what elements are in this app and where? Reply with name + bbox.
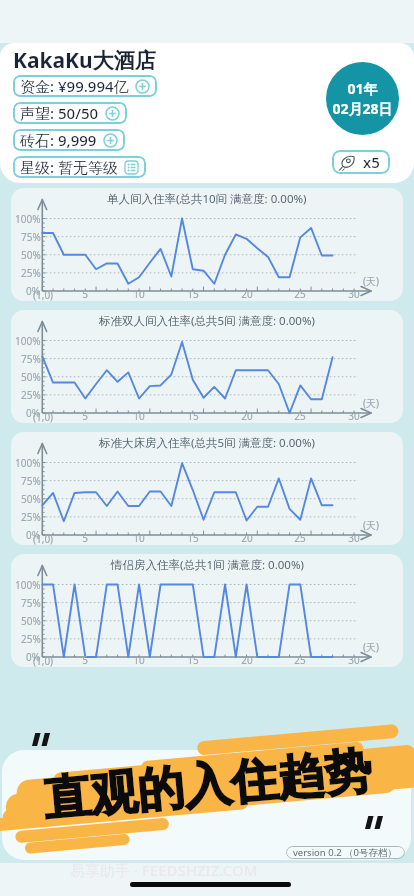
staticText: 20 xyxy=(238,287,256,301)
staticText: (天) xyxy=(363,396,379,410)
staticText: 15 xyxy=(184,287,202,301)
staticText: 100% xyxy=(15,334,41,348)
staticText: 25% xyxy=(21,266,41,280)
staticText: 直观的入住趋势 xyxy=(41,741,374,829)
staticText: 声望: 50/50 xyxy=(20,103,99,123)
staticText: 25 xyxy=(291,409,309,423)
button[interactable]: 标准大床房入住率(总共5间 满意度: 0.00%) xyxy=(11,432,403,545)
staticText: 5 xyxy=(76,531,94,545)
staticText: 20 xyxy=(238,409,256,423)
staticText: 50% xyxy=(21,370,41,384)
button[interactable]: version 0.2 （0号存档） xyxy=(286,846,405,859)
staticText: (天) xyxy=(363,640,379,654)
button[interactable]: 资金: ¥99.994亿 xyxy=(13,75,157,97)
staticText: 50% xyxy=(21,492,41,506)
staticText: 资金: ¥99.994亿 xyxy=(20,76,129,96)
button[interactable]: 砖石: 9,999 xyxy=(13,129,125,151)
staticText: 25 xyxy=(291,531,309,545)
staticText: 30 xyxy=(345,409,363,423)
staticText: 100% xyxy=(15,578,41,592)
staticText: 100% xyxy=(15,456,41,470)
staticText: 0% xyxy=(26,528,41,542)
staticText: 5 xyxy=(76,409,94,423)
button[interactable]: Game speed x5 xyxy=(332,150,390,174)
staticText: 20 xyxy=(238,653,256,667)
staticText: 0% xyxy=(26,650,41,664)
staticText: 01年 02月28日 xyxy=(332,79,393,118)
staticText: (1,0) xyxy=(33,654,54,667)
button[interactable]: 星级: 暂无等级 xyxy=(13,156,146,178)
button[interactable]: 情侣房入住率(总共1间 满意度: 0.00%) xyxy=(11,554,403,667)
staticText: 15 xyxy=(184,531,202,545)
staticText: 10 xyxy=(130,653,148,667)
staticText: (天) xyxy=(363,274,379,288)
staticText: 75% xyxy=(21,474,41,488)
staticText: 50% xyxy=(21,614,41,628)
staticText: 0% xyxy=(26,406,41,420)
staticText: 0% xyxy=(26,284,41,298)
button[interactable]: Current date xyxy=(326,62,399,135)
staticText: 75% xyxy=(21,352,41,366)
staticText: 15 xyxy=(184,653,202,667)
staticText: 情侣房入住率(总共1间 满意度: 0.00%) xyxy=(111,557,304,573)
staticText: (1,0) xyxy=(33,410,54,423)
staticText: 20 xyxy=(238,531,256,545)
button[interactable]: 标准双人间入住率(总共5间 满意度: 0.00%) xyxy=(11,310,403,423)
staticText: 10 xyxy=(130,409,148,423)
staticText: 50% xyxy=(21,248,41,262)
staticText: 单人间入住率(总共10间 满意度: 0.00%) xyxy=(107,191,307,207)
staticText: 100% xyxy=(15,212,41,226)
button[interactable]: 单人间入住率(总共10间 满意度: 0.00%) xyxy=(11,188,403,301)
staticText: x5 xyxy=(363,152,380,172)
staticText: (1,0) xyxy=(33,288,54,301)
staticText: 5 xyxy=(76,653,94,667)
staticText: 15 xyxy=(184,409,202,423)
staticText: 易享助手 · FEEDSHZIZ.COM xyxy=(70,860,258,880)
staticText: 星级: 暂无等级 xyxy=(20,157,118,177)
staticText: 30 xyxy=(345,531,363,545)
staticText: 砖石: 9,999 xyxy=(20,130,97,150)
staticText: 30 xyxy=(345,287,363,301)
staticText: 标准大床房入住率(总共5间 满意度: 0.00%) xyxy=(99,435,315,451)
button[interactable]: 声望: 50/50 xyxy=(13,102,127,124)
staticText: 75% xyxy=(21,596,41,610)
staticText: (1,0) xyxy=(33,532,54,545)
staticText: KakaKu大酒店 xyxy=(13,46,156,75)
staticText: 5 xyxy=(76,287,94,301)
staticText: 10 xyxy=(130,287,148,301)
staticText: 标准双人间入住率(总共5间 满意度: 0.00%) xyxy=(99,313,315,329)
staticText: 25 xyxy=(291,653,309,667)
staticText: (天) xyxy=(363,518,379,532)
staticText: 25% xyxy=(21,632,41,646)
staticText: 10 xyxy=(130,531,148,545)
staticText: 25% xyxy=(21,388,41,402)
staticText: 25% xyxy=(21,510,41,524)
staticText: version 0.2 （0号存档） xyxy=(293,846,398,859)
staticText: 25 xyxy=(291,287,309,301)
staticText: 75% xyxy=(21,230,41,244)
staticText: 30 xyxy=(345,653,363,667)
